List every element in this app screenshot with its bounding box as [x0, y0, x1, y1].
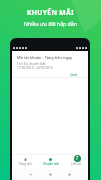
staticText: Mở tài khoản - Tặng tiền ngay — [17, 55, 73, 60]
staticText: Liên hệ — [71, 162, 81, 166]
button[interactable]: Mở tài khoản - Tặng tiền ngay — [12, 55, 88, 77]
button[interactable]: Khuyến mãi — [38, 155, 63, 169]
staticText: Tích lũy chuyên biệt — [17, 62, 46, 66]
staticText: Trang chủ — [18, 162, 32, 166]
staticText: ? — [76, 155, 79, 162]
button[interactable]: Back — [29, 173, 32, 176]
button[interactable]: Home — [49, 173, 52, 176]
staticText: Khuyến mãi — [43, 162, 59, 166]
button[interactable]: Liên hệ — [63, 155, 88, 169]
button[interactable]: Help — [74, 155, 81, 162]
staticText: 17/06/2019 - 30/07/2019 — [17, 66, 53, 70]
button[interactable]: Recents — [68, 173, 71, 176]
staticText: Nhiều ưu đãi hấp dẫn — [24, 20, 77, 27]
staticText: KHUYẾN MÃI — [27, 8, 74, 17]
staticText: Quà — [70, 72, 78, 77]
button[interactable]: Trang chủ — [12, 155, 38, 169]
